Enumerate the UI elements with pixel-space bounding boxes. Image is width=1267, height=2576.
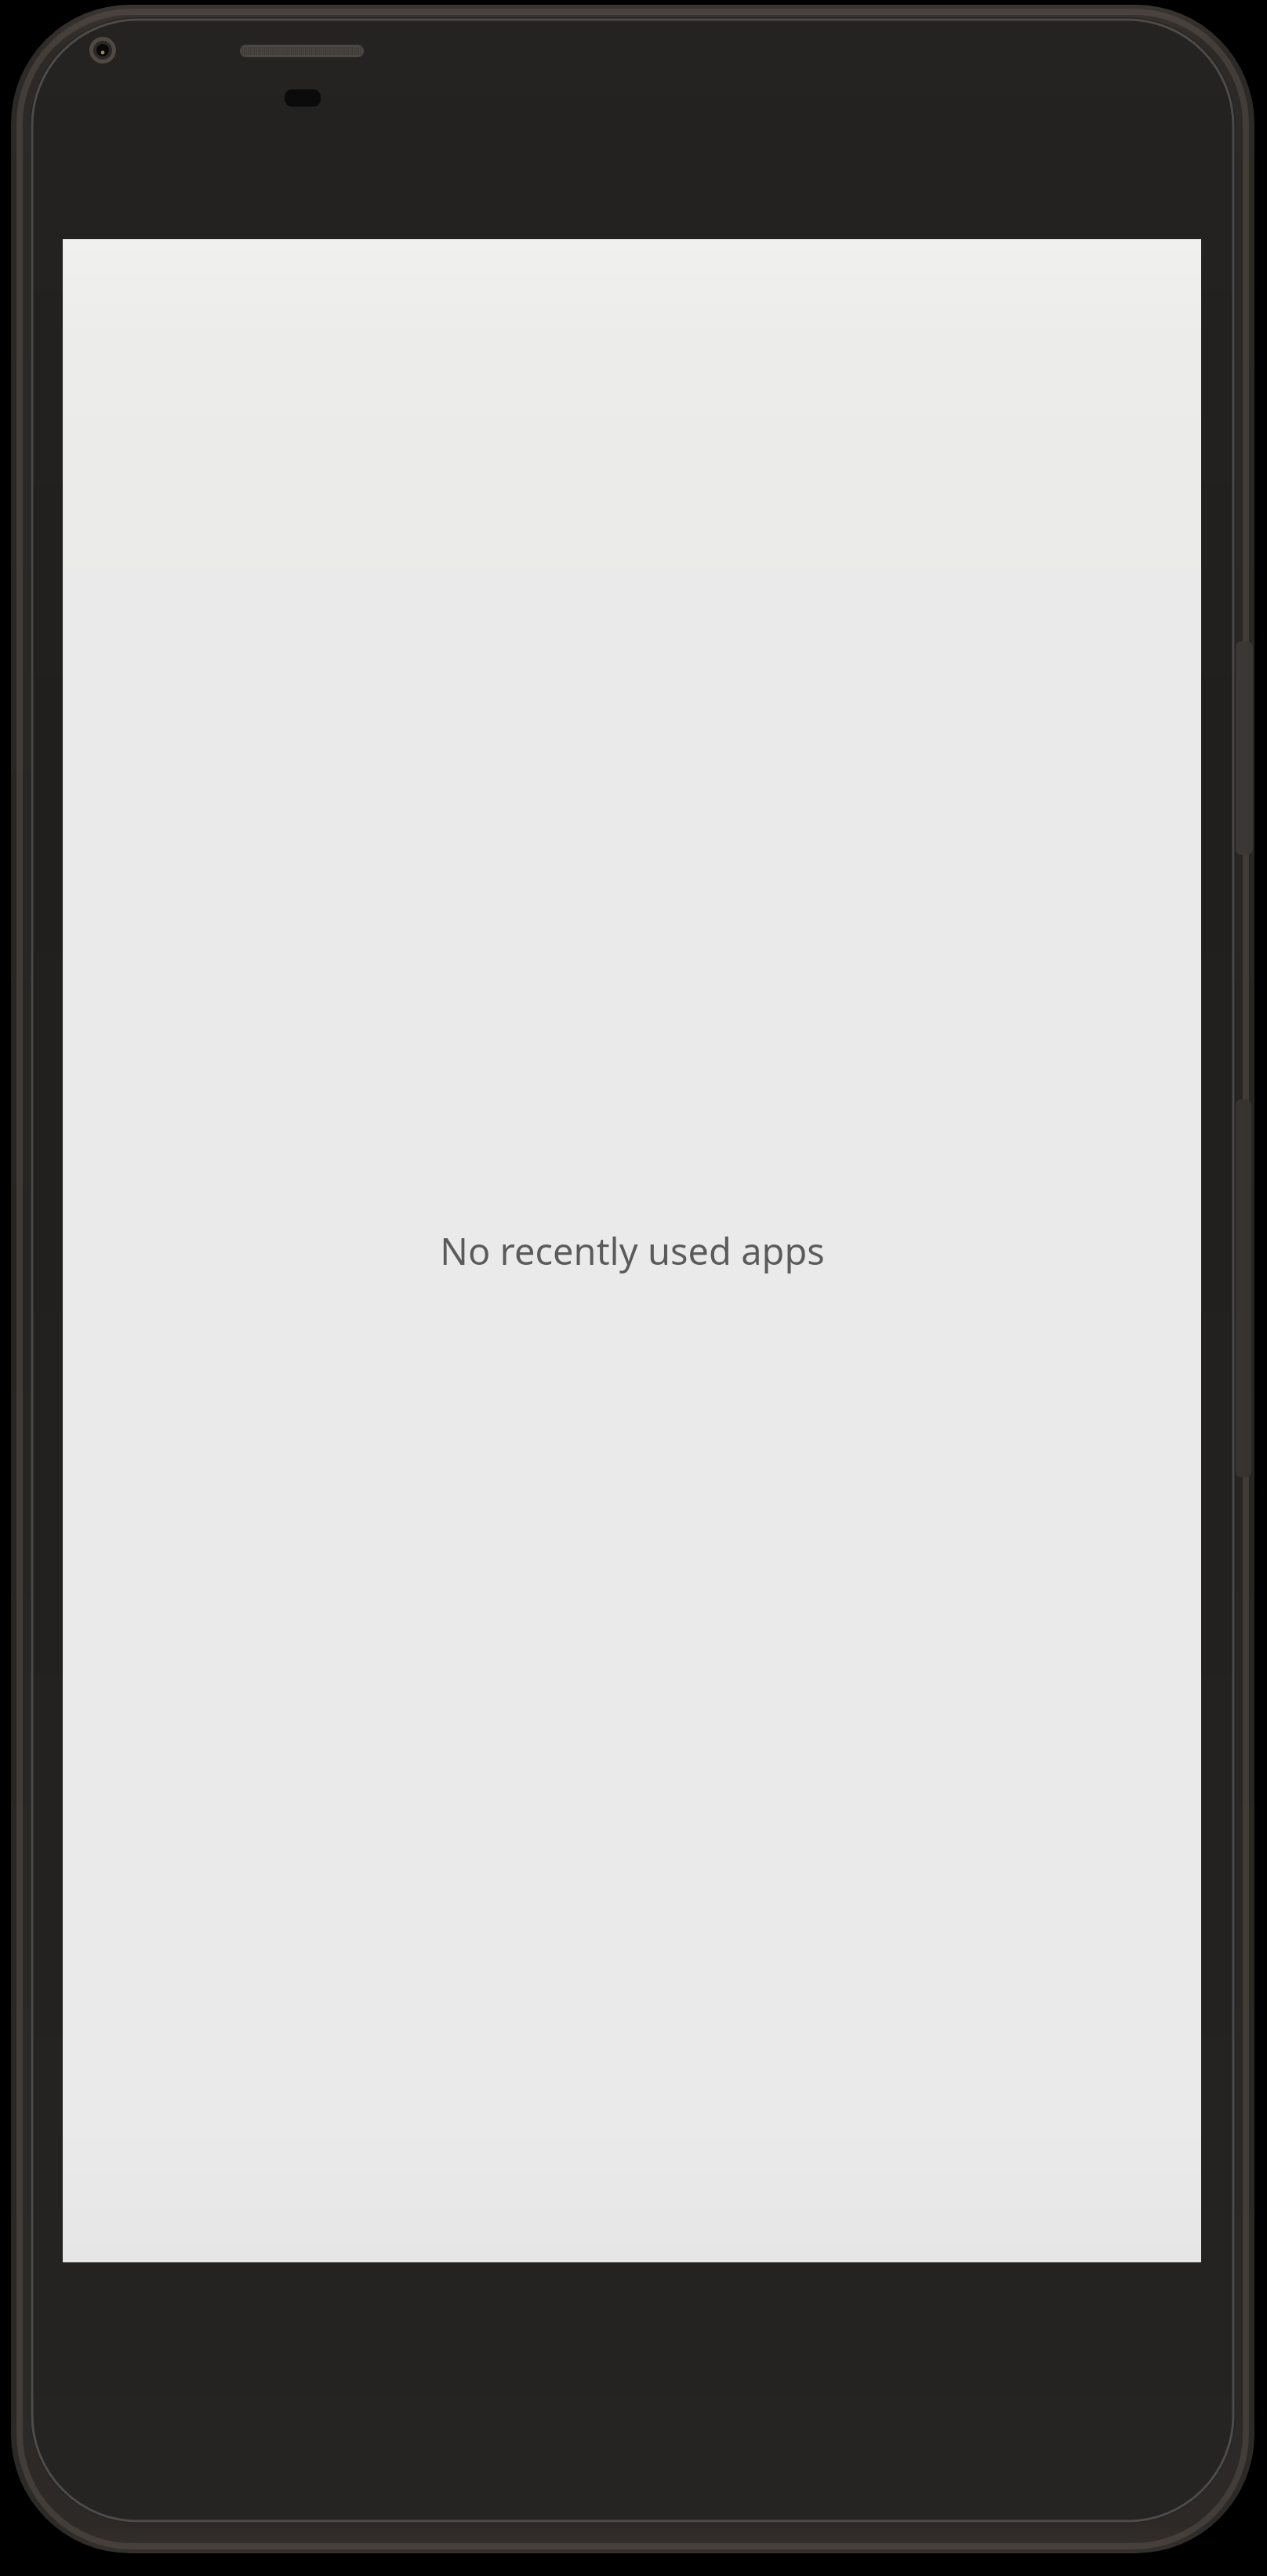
staticText: No recently used apps <box>440 1226 825 1276</box>
button[interactable]: No recently used apps <box>63 1226 1201 1276</box>
